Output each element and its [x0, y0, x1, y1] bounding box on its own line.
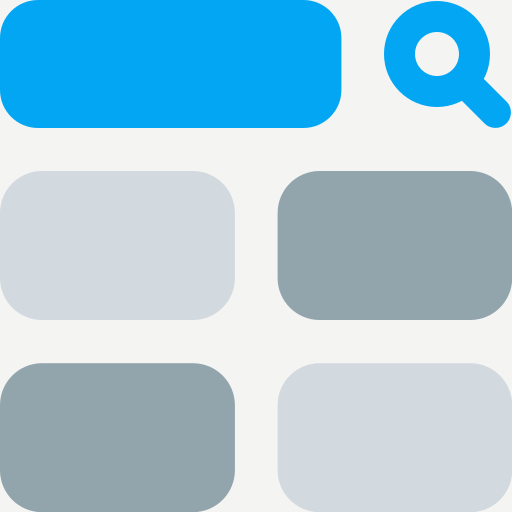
button[interactable]: Tile [278, 363, 512, 512]
button[interactable]: Search [447, 83, 512, 114]
button[interactable]: Tile [278, 171, 512, 320]
button[interactable]: Tile [0, 171, 235, 320]
button[interactable]: Tile [0, 363, 235, 512]
button[interactable]: Search field [0, 0, 341, 128]
